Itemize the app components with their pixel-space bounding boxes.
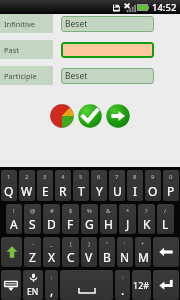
staticText: 1 [7, 173, 11, 181]
button[interactable]: Hide keyboard [1, 270, 21, 300]
button[interactable]: ) [81, 237, 97, 267]
staticText: ( [70, 240, 72, 248]
button[interactable]: 8 [127, 170, 143, 201]
staticText: H [104, 216, 113, 232]
button[interactable]: 0 [163, 170, 179, 201]
staticText: 3 [43, 173, 47, 181]
button[interactable]: ? [138, 204, 155, 234]
staticText: Beset [65, 18, 88, 30]
button[interactable]: - [24, 237, 41, 267]
staticText: " [106, 240, 109, 248]
staticText: 2 [25, 173, 29, 181]
staticText: Y [96, 183, 103, 199]
staticText: - [32, 240, 34, 248]
staticText: F [67, 216, 74, 232]
staticText: L [162, 216, 169, 232]
staticText: , [50, 282, 54, 298]
staticText: C [67, 249, 75, 265]
staticText: J [126, 216, 130, 232]
button[interactable]: / [157, 204, 174, 234]
staticText: 12# [133, 279, 150, 291]
staticText: Q [4, 183, 14, 199]
staticText: 6 [97, 173, 101, 181]
staticText: Past [4, 45, 20, 55]
staticText: Z [29, 249, 36, 265]
staticText: T [78, 183, 85, 199]
button[interactable]: Enter [153, 270, 179, 300]
button[interactable]: Check answer [77, 103, 103, 129]
button[interactable]: & [100, 204, 117, 234]
button[interactable]: Space [60, 270, 113, 300]
staticText: EN [27, 286, 39, 298]
button[interactable]: 12# [132, 270, 151, 300]
button[interactable]: * [119, 204, 136, 234]
staticText: ; [51, 273, 53, 281]
staticText: # [50, 207, 54, 215]
button[interactable]: Statistics [49, 103, 75, 129]
button[interactable]: Beset [61, 68, 154, 84]
button[interactable]: % [81, 204, 98, 234]
staticText: E [42, 183, 49, 199]
staticText: 8 [133, 173, 137, 181]
button[interactable]: @ [24, 204, 41, 234]
staticText: @ [30, 207, 36, 215]
button[interactable]: 4 [55, 170, 71, 201]
button[interactable]: 7 [109, 170, 125, 201]
button[interactable]: ' [117, 237, 133, 267]
staticText: & [106, 207, 111, 215]
staticText: / [164, 207, 167, 215]
button[interactable]: ( [62, 237, 79, 267]
staticText: ? [145, 207, 148, 215]
staticText: P [167, 183, 175, 199]
button[interactable]: 1 [1, 170, 17, 201]
staticText: X [48, 249, 56, 265]
staticText: $ [69, 207, 73, 215]
staticText: U [113, 183, 122, 199]
staticText: S [29, 216, 36, 232]
staticText: D [47, 216, 56, 232]
button[interactable]: $ [62, 204, 79, 234]
staticText: 14:52 [152, 1, 177, 14]
button[interactable]: + [135, 237, 151, 267]
staticText: N [120, 249, 130, 265]
staticText: Participle [4, 71, 37, 81]
button[interactable]: 9 [145, 170, 161, 201]
staticText: M [138, 249, 149, 265]
staticText: % [87, 207, 92, 215]
staticText: G [85, 216, 94, 232]
staticText: ' [124, 240, 126, 248]
button[interactable]: ; [45, 270, 58, 300]
staticText: . [121, 282, 125, 298]
staticText: A [10, 216, 18, 232]
button[interactable]: 6 [91, 170, 107, 201]
staticText: 7 [115, 173, 119, 181]
staticText: ! [13, 207, 15, 215]
button[interactable]: # [43, 204, 60, 234]
button[interactable]: Beset [61, 16, 154, 32]
staticText: I [133, 183, 138, 199]
button[interactable]: : [115, 270, 130, 300]
staticText: 0 [169, 173, 173, 181]
staticText: : [122, 273, 124, 281]
button[interactable]: Backspace [153, 237, 179, 267]
button[interactable]: Next verb [105, 103, 131, 129]
button[interactable]: _ [43, 237, 60, 267]
staticText: Beset [65, 70, 88, 82]
button[interactable]: " [99, 237, 115, 267]
staticText: ) [88, 240, 90, 248]
staticText: 5 [79, 173, 83, 181]
staticText: _ [50, 240, 53, 248]
button[interactable]: 3 [37, 170, 53, 201]
button[interactable]: 2 [19, 170, 35, 201]
button[interactable] [61, 42, 154, 58]
button[interactable]: 5 [73, 170, 89, 201]
staticText: Infinitive [4, 19, 35, 29]
staticText: K [143, 216, 151, 232]
button[interactable]: Shift [1, 237, 22, 267]
staticText: W [21, 183, 33, 199]
staticText: 4 [61, 173, 65, 181]
staticText: + [141, 240, 145, 248]
button[interactable]: ! [6, 204, 22, 234]
button[interactable]: Voice input [23, 270, 43, 300]
staticText: R [59, 183, 67, 199]
